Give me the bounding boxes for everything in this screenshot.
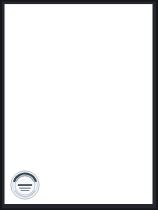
button[interactable]: Certification seal	[10, 170, 40, 200]
